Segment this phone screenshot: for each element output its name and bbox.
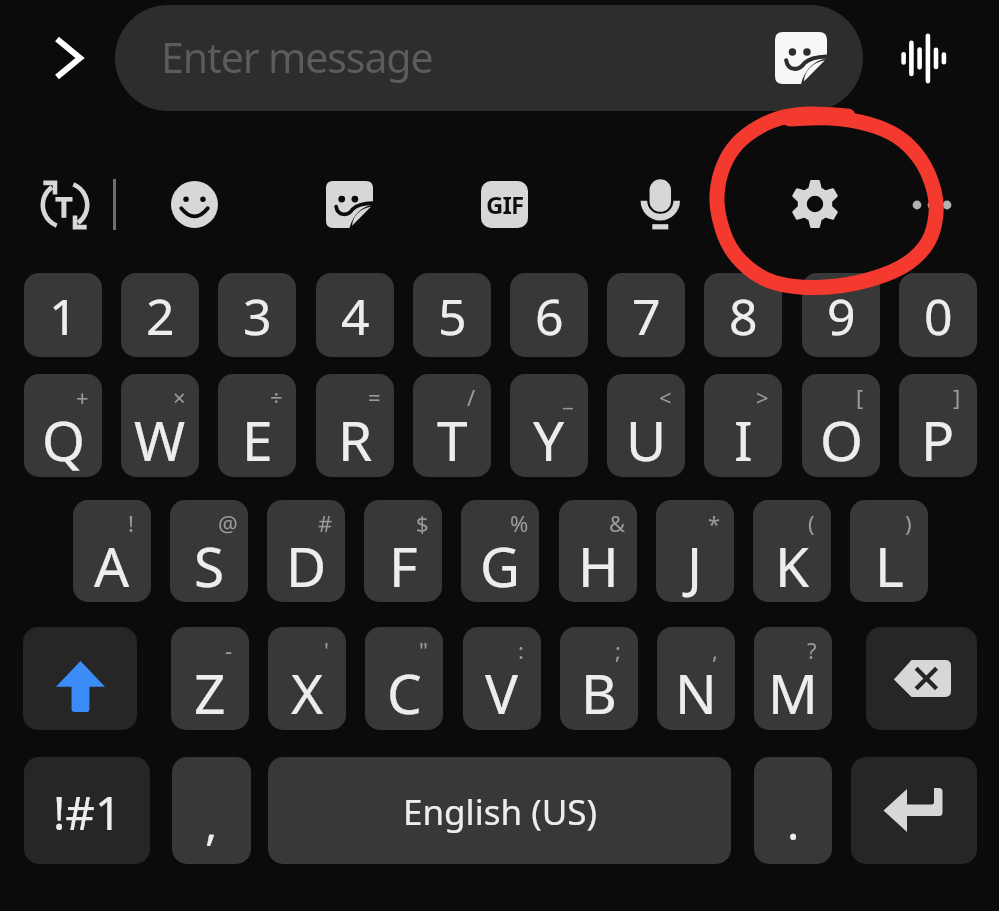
button[interactable]: 9 xyxy=(802,273,880,357)
staticText: 7 xyxy=(632,282,661,350)
staticText: $ xyxy=(416,508,429,538)
staticText: S xyxy=(194,528,225,602)
button[interactable]: 3 xyxy=(218,273,296,357)
button[interactable]: Stickers xyxy=(775,32,827,84)
button[interactable]: # xyxy=(267,500,345,602)
staticText: R xyxy=(338,402,373,477)
button[interactable]: ) xyxy=(850,500,928,602)
button[interactable]: @ xyxy=(170,500,248,602)
staticText: K xyxy=(775,528,810,602)
button[interactable]: > xyxy=(704,374,782,477)
staticText: . xyxy=(787,791,800,854)
button[interactable]: + xyxy=(24,374,102,477)
button[interactable]: : xyxy=(463,627,541,730)
button[interactable]: Shift xyxy=(23,627,137,730)
button[interactable]: Expand toolbar xyxy=(34,24,102,92)
button[interactable]: / xyxy=(413,374,491,477)
staticText: T xyxy=(437,402,468,477)
staticText: % xyxy=(510,508,529,538)
staticText: * xyxy=(708,508,721,538)
staticText: - xyxy=(225,635,233,665)
staticText: > xyxy=(756,382,769,412)
staticText: 8 xyxy=(729,282,758,350)
staticText: H xyxy=(578,528,619,602)
button[interactable]: " xyxy=(365,627,443,730)
button[interactable]: Voice input xyxy=(890,25,955,90)
button[interactable]: , xyxy=(172,757,251,864)
button[interactable]: 1 xyxy=(24,273,102,357)
button[interactable]: Enter xyxy=(851,757,977,864)
staticText: D xyxy=(286,528,327,602)
button[interactable]: % xyxy=(461,500,539,602)
staticText: G xyxy=(480,528,521,602)
button[interactable]: 8 xyxy=(704,273,782,357)
staticText: L xyxy=(875,528,904,602)
button[interactable]: English (US) xyxy=(268,757,731,864)
button[interactable]: !#1 xyxy=(24,757,150,864)
staticText: !#1 xyxy=(53,781,122,844)
staticText: , xyxy=(712,635,718,665)
staticText: O xyxy=(820,402,863,477)
button[interactable]: < xyxy=(607,374,685,477)
staticText: = xyxy=(368,382,381,412)
button[interactable]: More options xyxy=(900,182,962,228)
button[interactable]: & xyxy=(559,500,637,602)
button[interactable]: 4 xyxy=(316,273,394,357)
button[interactable]: ] xyxy=(899,374,977,477)
staticText: ? xyxy=(807,635,817,665)
staticText: 5 xyxy=(438,282,467,350)
staticText: I xyxy=(734,402,753,477)
button[interactable]: ( xyxy=(753,500,831,602)
staticText: : xyxy=(518,635,524,665)
button[interactable]: _ xyxy=(510,374,588,477)
staticText: P xyxy=(921,402,955,477)
staticText: F xyxy=(389,528,418,602)
button[interactable]: , xyxy=(657,627,735,730)
button[interactable]: * xyxy=(656,500,734,602)
button[interactable]: ÷ xyxy=(218,374,296,477)
staticText: J xyxy=(687,528,703,602)
staticText: ( xyxy=(808,508,815,538)
button[interactable]: 5 xyxy=(413,273,491,357)
button[interactable]: $ xyxy=(364,500,442,602)
button[interactable]: Sticker xyxy=(326,181,373,228)
button[interactable]: 7 xyxy=(607,273,685,357)
staticText: A xyxy=(94,528,130,602)
staticText: ! xyxy=(128,508,134,538)
staticText: < xyxy=(659,382,672,412)
button[interactable]: ! xyxy=(73,500,151,602)
button[interactable]: ; xyxy=(560,627,638,730)
button[interactable]: 6 xyxy=(510,273,588,357)
staticText: , xyxy=(205,791,218,854)
staticText: 4 xyxy=(341,282,370,350)
button[interactable]: Emoji xyxy=(164,174,225,235)
button[interactable]: Backspace xyxy=(866,627,977,730)
button[interactable]: [ xyxy=(802,374,880,477)
button[interactable]: GIF xyxy=(481,181,528,228)
button[interactable]: = xyxy=(316,374,394,477)
staticText: N xyxy=(675,655,717,730)
button[interactable]: - xyxy=(171,627,249,730)
staticText: Enter message xyxy=(161,29,433,85)
button[interactable]: 2 xyxy=(121,273,199,357)
button[interactable]: Settings xyxy=(785,174,845,234)
staticText: @ xyxy=(218,508,238,538)
button[interactable]: . xyxy=(754,757,832,864)
button[interactable]: 0 xyxy=(899,273,977,357)
button[interactable]: Translate xyxy=(35,175,95,235)
staticText: W xyxy=(134,402,186,477)
staticText: _ xyxy=(563,382,573,412)
staticText: ' xyxy=(324,635,329,665)
button[interactable]: ' xyxy=(268,627,346,730)
button[interactable]: × xyxy=(121,374,199,477)
staticText: Z xyxy=(194,655,226,730)
staticText: + xyxy=(76,382,89,412)
staticText: & xyxy=(609,508,626,538)
button[interactable]: Voice typing xyxy=(635,172,690,235)
staticText: E xyxy=(242,402,273,477)
staticText: M xyxy=(768,655,818,730)
staticText: Q xyxy=(42,402,85,477)
button[interactable]: Enter message xyxy=(115,5,863,111)
staticText: ] xyxy=(953,382,961,412)
button[interactable]: ? xyxy=(754,627,832,730)
